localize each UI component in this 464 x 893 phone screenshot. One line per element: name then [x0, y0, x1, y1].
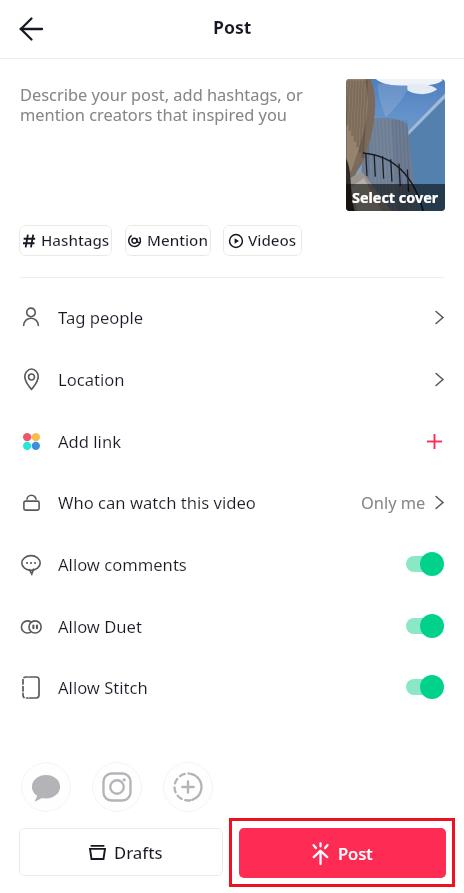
staticText: Only me: [361, 491, 426, 513]
button[interactable]: Allow comments: [0, 533, 464, 595]
staticText: Tag people: [58, 306, 144, 329]
staticText: Allow Stitch: [58, 676, 148, 699]
button[interactable]: Back: [9, 7, 53, 51]
staticText: Videos: [248, 230, 297, 251]
button[interactable]: Add link: [0, 410, 464, 472]
staticText: Describe your post, add hashtags, or men…: [20, 83, 320, 126]
staticText: Mention: [147, 230, 208, 251]
staticText: Who can watch this video: [58, 491, 256, 514]
button[interactable]: Allow Duet: [0, 595, 464, 657]
button[interactable]: Share to Instagram: [92, 762, 142, 812]
button[interactable]: Share to messages: [21, 762, 71, 812]
staticText: Add link: [58, 430, 122, 453]
button[interactable]: Add link: [424, 431, 444, 451]
button[interactable]: Hashtags: [19, 225, 112, 256]
staticText: Hashtags: [41, 230, 110, 251]
button[interactable]: Post: [229, 818, 455, 887]
staticText: Select cover: [352, 188, 439, 208]
staticText: Drafts: [114, 841, 163, 864]
staticText: Allow Duet: [58, 615, 142, 638]
staticText: Location: [58, 368, 125, 391]
button[interactable]: Mention: [125, 225, 211, 256]
button[interactable]: Who can watch this video: [0, 471, 464, 533]
button[interactable]: Drafts: [19, 828, 223, 876]
button[interactable]: Toggle: [405, 551, 446, 577]
button[interactable]: Videos: [223, 225, 302, 256]
staticText: Post: [338, 842, 373, 865]
button[interactable]: Share to story: [163, 762, 213, 812]
button[interactable]: Toggle: [405, 674, 446, 700]
staticText: Allow comments: [58, 553, 187, 576]
button[interactable]: Select cover: [346, 79, 445, 211]
button[interactable]: Tag people: [0, 286, 464, 348]
staticText: Post: [213, 15, 252, 39]
button[interactable]: Location: [0, 348, 464, 410]
button[interactable]: Allow Stitch: [0, 656, 464, 718]
button[interactable]: Toggle: [405, 613, 446, 639]
